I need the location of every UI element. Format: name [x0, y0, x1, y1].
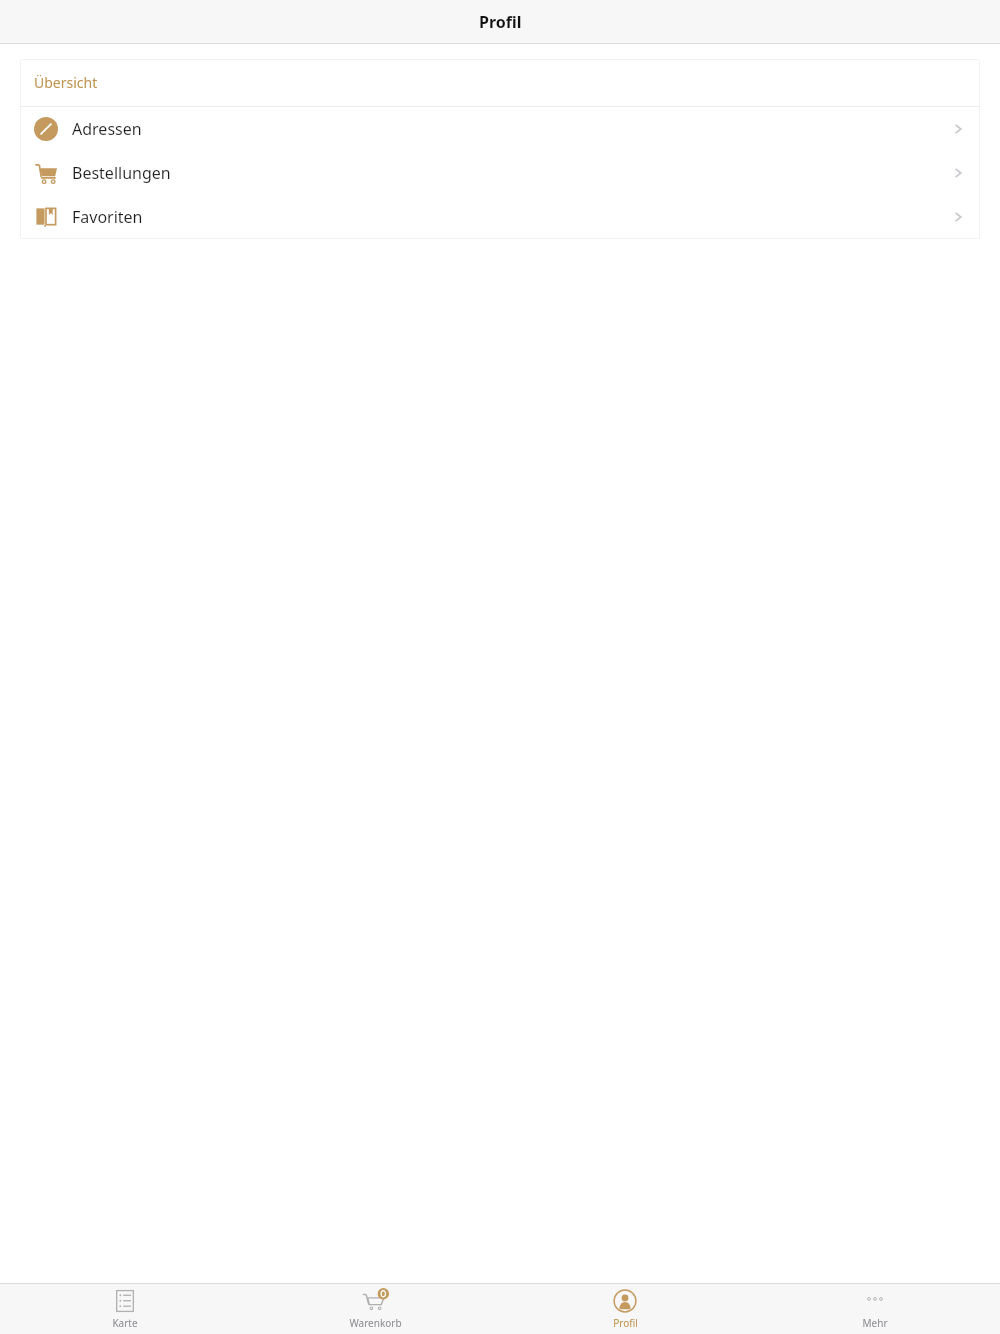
button[interactable]: Profil: [500, 1284, 750, 1334]
button[interactable]: Favoriten: [20, 195, 980, 239]
staticText: Bestellungen: [72, 162, 171, 184]
staticText: Mehr: [862, 1316, 888, 1330]
button[interactable]: Karte: [0, 1284, 250, 1334]
staticText: Warenkorb: [349, 1316, 402, 1330]
staticText: Profil: [613, 1316, 638, 1330]
button[interactable]: Adressen: [20, 107, 980, 151]
staticText: Favoriten: [72, 206, 143, 228]
staticText: Profil: [479, 11, 522, 33]
staticText: Adressen: [72, 118, 142, 140]
staticText: Übersicht: [34, 73, 98, 92]
button[interactable]: Bestellungen: [20, 151, 980, 195]
button[interactable]: Warenkorb: [250, 1284, 500, 1334]
staticText: Karte: [112, 1316, 138, 1330]
button[interactable]: Mehr: [750, 1284, 1000, 1334]
